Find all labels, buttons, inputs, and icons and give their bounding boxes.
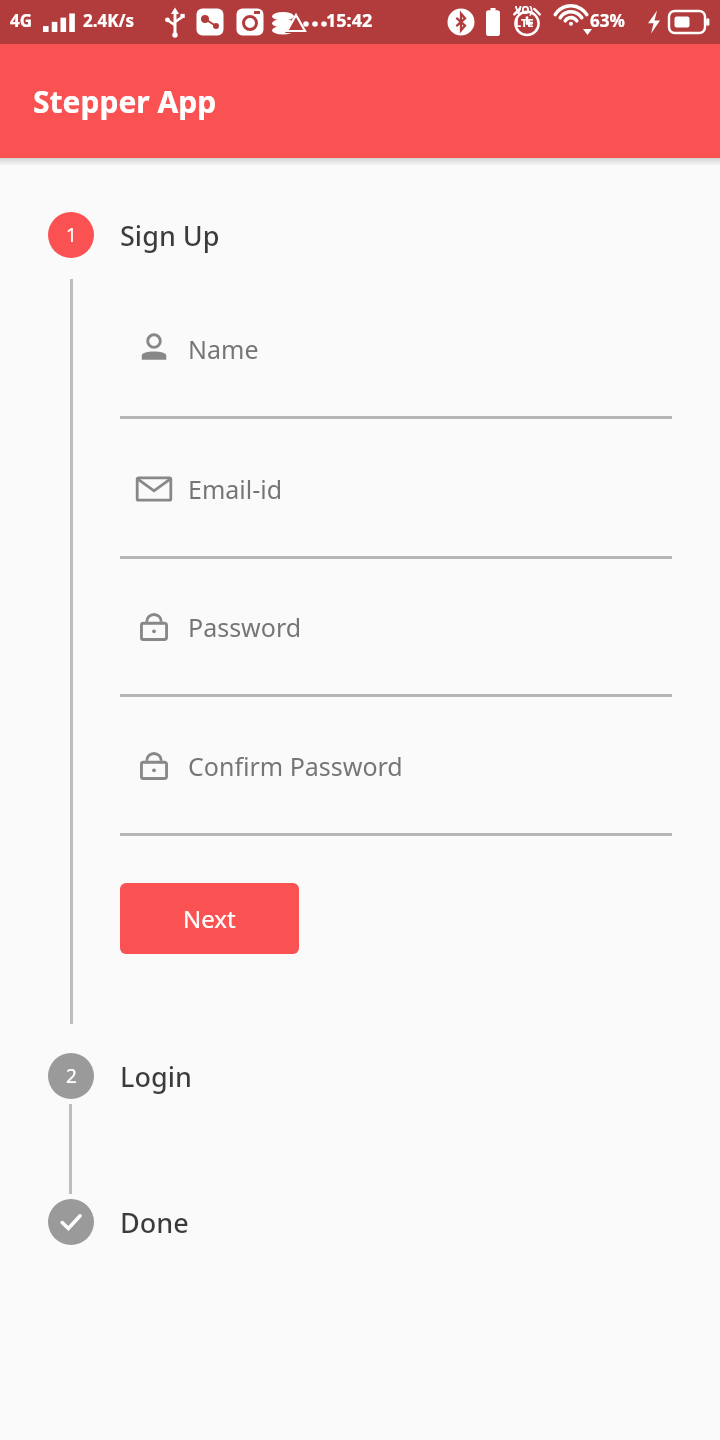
staticText: Password bbox=[188, 610, 302, 644]
staticText: Name bbox=[188, 332, 259, 366]
button[interactable]: Password bbox=[120, 559, 672, 694]
button[interactable]: Step Login bbox=[0, 1048, 720, 1104]
staticText: 1 bbox=[66, 222, 77, 248]
staticText: Email-id bbox=[188, 472, 283, 506]
staticText: Stepper App bbox=[33, 81, 217, 122]
staticText: VO) bbox=[515, 3, 533, 17]
staticText: 4G bbox=[10, 9, 33, 32]
button[interactable]: Email-id bbox=[120, 421, 672, 556]
staticText: 2.4K/s bbox=[83, 9, 135, 32]
staticText: Done bbox=[120, 1204, 189, 1241]
staticText: 2 bbox=[66, 1063, 77, 1089]
button[interactable]: Step Sign Up bbox=[0, 207, 720, 263]
staticText: Sign Up bbox=[120, 217, 220, 254]
staticText: Confirm Password bbox=[188, 749, 403, 783]
button[interactable]: Confirm Password bbox=[120, 698, 672, 833]
staticText: Next bbox=[183, 902, 236, 935]
staticText: Login bbox=[120, 1058, 192, 1095]
staticText: 15:42 bbox=[326, 8, 373, 33]
button[interactable]: Next bbox=[120, 883, 299, 954]
button[interactable]: Step Done bbox=[0, 1194, 720, 1250]
staticText: LTE bbox=[515, 15, 534, 30]
staticText: 63% bbox=[590, 9, 625, 32]
button[interactable]: Name bbox=[120, 281, 672, 416]
